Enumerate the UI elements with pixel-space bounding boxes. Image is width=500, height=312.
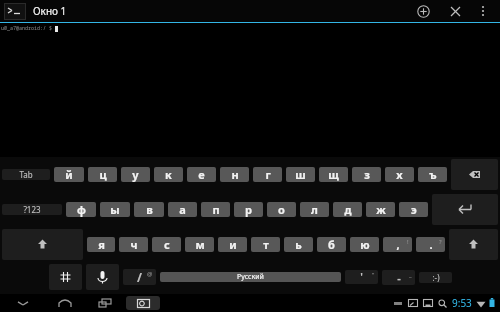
button[interactable]: ъ [418,167,447,182]
staticText: u0_a7@android:/ $ [1,25,53,32]
staticText: Tab [19,169,33,180]
button[interactable]: з [352,167,381,182]
button[interactable]: Backspace [451,159,498,190]
staticText: ы [110,202,120,217]
button[interactable]: ?123 [2,204,62,215]
button[interactable]: й [54,167,84,182]
staticText: ' [360,270,363,284]
staticText: з [364,167,370,182]
button[interactable]: н [220,167,249,182]
staticText: г [265,167,271,182]
button[interactable]: Tab [2,169,50,180]
button[interactable]: л [300,202,329,217]
staticText: о [278,202,285,217]
button[interactable]: ф [66,202,96,217]
button[interactable]: Input settings [49,264,82,290]
staticText: ж [376,202,386,217]
button[interactable]: Enter [432,194,498,225]
staticText: я [98,237,105,252]
staticText: и [229,237,237,252]
button[interactable]: , [383,237,412,252]
staticText: ч [130,237,138,252]
button[interactable]: . [416,237,445,252]
staticText: й [65,167,73,182]
button[interactable]: ь [284,237,313,252]
button[interactable]: / [123,269,156,285]
staticText: х [396,167,403,182]
button[interactable]: Voice input [86,264,119,290]
staticText: л [311,202,318,217]
staticText: ш [295,167,306,182]
button[interactable]: More options [470,0,496,22]
button[interactable]: у [121,167,150,182]
staticText: ! [407,238,409,246]
staticText: 9:53 [452,296,472,310]
button[interactable]: ш [286,167,315,182]
button[interactable]: ц [88,167,117,182]
staticText: Окно 1 [33,4,67,18]
button[interactable]: Русский [160,272,341,282]
staticText: ю [360,237,370,252]
button[interactable]: - [382,270,415,285]
staticText: ъ [429,167,437,182]
button[interactable]: м [185,237,214,252]
staticText: м [195,237,205,252]
button[interactable]: а [168,202,197,217]
button[interactable]: р [234,202,263,217]
staticText: б [328,237,335,252]
button[interactable]: к [154,167,183,182]
button[interactable]: с [152,237,181,252]
button[interactable]: д [333,202,362,217]
staticText: ?123 [23,204,41,215]
button[interactable]: Окно 1 [33,4,67,18]
button[interactable]: New window [410,0,436,22]
button[interactable]: Screenshot [126,296,160,310]
staticText: ц [99,167,107,182]
staticText: _ [409,271,412,279]
button[interactable]: г [253,167,282,182]
staticText: п [212,202,220,217]
button[interactable]: Close [442,0,468,22]
button[interactable]: о [267,202,296,217]
staticText: , [396,237,400,252]
button[interactable]: ю [350,237,379,252]
staticText: @ [147,270,153,278]
staticText: " [372,271,375,279]
button[interactable]: х [385,167,414,182]
staticText: / [137,269,142,285]
staticText: к [165,167,172,182]
button[interactable]: ы [100,202,130,217]
staticText: ? [439,238,442,246]
staticText: ь [295,237,302,252]
button[interactable]: э [399,202,428,217]
staticText: Русский [237,272,264,282]
staticText: а [179,202,186,217]
button[interactable]: щ [319,167,348,182]
button[interactable]: :-) [419,272,452,283]
button[interactable]: е [187,167,216,182]
button[interactable]: Shift [449,229,498,260]
button[interactable]: ж [366,202,395,217]
button[interactable]: в [134,202,164,217]
button[interactable]: Hide keyboard [8,294,38,312]
button[interactable]: Recent apps [90,294,120,312]
button[interactable]: т [251,237,280,252]
staticText: д [344,202,352,217]
button[interactable]: я [87,237,115,252]
staticText: ф [77,202,86,217]
staticText: э [411,202,417,217]
staticText: - [397,270,401,285]
staticText: щ [328,167,339,182]
button[interactable]: и [218,237,247,252]
staticText: т [263,237,269,252]
button[interactable]: ч [119,237,148,252]
button[interactable]: б [317,237,346,252]
button[interactable]: п [201,202,230,217]
staticText: е [198,167,205,182]
staticText: в [146,202,153,217]
button[interactable]: ' [345,270,378,284]
button[interactable]: Home [50,294,80,312]
staticText: :-) [432,272,440,283]
button[interactable]: Shift [2,229,83,260]
staticText: с [164,237,170,252]
